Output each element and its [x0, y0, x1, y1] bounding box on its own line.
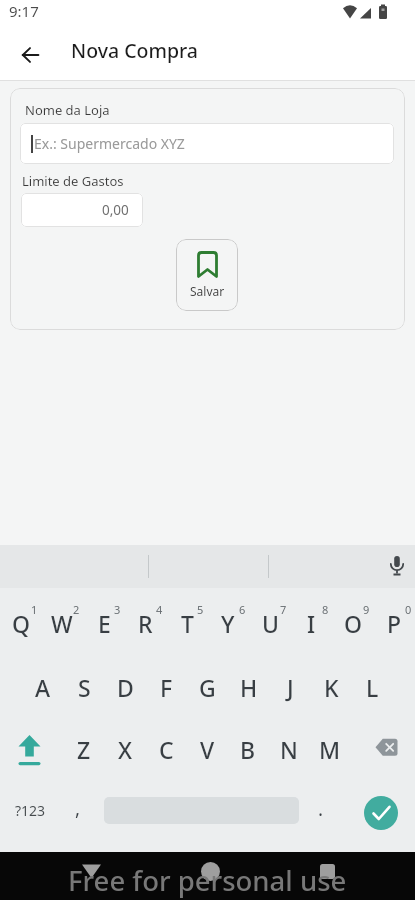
staticText: M — [319, 734, 341, 765]
button[interactable]: U — [251, 602, 289, 644]
staticText: Salvar — [190, 283, 225, 299]
button[interactable]: W — [43, 602, 81, 644]
button[interactable] — [381, 550, 413, 582]
staticText: R — [138, 608, 153, 639]
button[interactable]: S — [65, 666, 103, 708]
staticText: , — [75, 795, 81, 821]
button[interactable]: P — [375, 602, 413, 644]
button[interactable]: O — [334, 602, 372, 644]
staticText: 6 — [239, 602, 246, 616]
button[interactable]: J — [271, 666, 309, 708]
staticText: 0 — [405, 602, 412, 616]
button[interactable]: Salvar — [176, 239, 238, 311]
staticText: 8 — [322, 602, 329, 616]
button[interactable]: . — [305, 788, 337, 830]
staticText: D — [117, 672, 134, 703]
staticText: J — [287, 672, 294, 703]
button[interactable]: B — [229, 728, 267, 770]
staticText: S — [78, 672, 91, 703]
button[interactable] — [189, 850, 231, 892]
button[interactable]: Ex.: Supermercado XYZ — [20, 123, 394, 164]
button[interactable]: A — [24, 666, 62, 708]
button[interactable] — [306, 850, 348, 892]
button[interactable]: N — [270, 728, 308, 770]
button[interactable]: K — [312, 666, 350, 708]
button[interactable]: T — [168, 602, 206, 644]
staticText: Nome da Loja — [25, 101, 110, 119]
staticText: W — [51, 608, 73, 639]
staticText: 5 — [197, 602, 204, 616]
staticText: 9 — [363, 602, 370, 616]
staticText: N — [280, 734, 298, 765]
staticText: L — [366, 672, 379, 703]
button[interactable] — [364, 725, 408, 769]
staticText: O — [344, 608, 363, 639]
button[interactable]: Z — [65, 728, 103, 770]
button[interactable]: F — [147, 666, 185, 708]
staticText: Y — [221, 608, 235, 639]
staticText: K — [324, 672, 339, 703]
staticText: V — [200, 734, 215, 765]
button[interactable]: Q — [2, 602, 40, 644]
staticText: 2 — [73, 602, 80, 616]
button[interactable]: G — [188, 666, 226, 708]
staticText: X — [118, 734, 133, 765]
staticText: Ex.: Supermercado XYZ — [34, 134, 185, 153]
staticText: . — [318, 796, 324, 822]
staticText: 3 — [114, 602, 121, 616]
staticText: 7 — [280, 602, 287, 616]
staticText: H — [240, 672, 258, 703]
button[interactable]: V — [188, 728, 226, 770]
button[interactable]: I — [292, 602, 330, 644]
button[interactable]: H — [230, 666, 268, 708]
staticText: B — [240, 734, 256, 765]
button[interactable]: R — [126, 602, 164, 644]
button[interactable] — [14, 39, 46, 71]
staticText: Nova Compra — [71, 37, 199, 64]
staticText: P — [387, 608, 402, 639]
button[interactable]: D — [106, 666, 144, 708]
staticText: 4 — [156, 602, 163, 616]
staticText: Z — [77, 734, 91, 765]
staticText: 0,00 — [102, 201, 129, 219]
button[interactable]: 0,00 — [21, 193, 143, 227]
button[interactable]: M — [311, 728, 349, 770]
staticText: T — [181, 608, 194, 639]
button[interactable]: X — [106, 728, 144, 770]
staticText: Free for personal use — [68, 862, 347, 899]
button[interactable]: L — [353, 666, 391, 708]
staticText: A — [35, 672, 51, 703]
button[interactable]: Y — [209, 602, 247, 644]
button[interactable] — [70, 850, 112, 892]
staticText: Limite de Gastos — [22, 172, 124, 190]
staticText: U — [262, 608, 279, 639]
button[interactable]: ?123 — [8, 789, 52, 831]
button[interactable]: C — [147, 728, 185, 770]
button[interactable] — [7, 728, 51, 772]
button[interactable] — [364, 796, 398, 830]
staticText: E — [98, 608, 111, 639]
staticText: C — [159, 734, 174, 765]
staticText: 1 — [31, 602, 38, 616]
staticText: Q — [12, 608, 31, 639]
button[interactable]: , — [62, 787, 94, 829]
button[interactable]: E — [85, 602, 123, 644]
staticText: G — [199, 672, 216, 703]
staticText: I — [307, 608, 316, 639]
staticText: 9:17 — [9, 1, 39, 21]
staticText: ?123 — [15, 801, 46, 820]
staticText: F — [160, 672, 173, 703]
